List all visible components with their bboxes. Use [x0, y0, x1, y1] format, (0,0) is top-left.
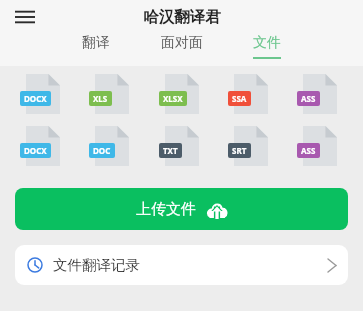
staticText: TXT — [163, 145, 178, 156]
staticText: SSA — [232, 93, 247, 104]
staticText: 上传文件 — [136, 200, 196, 219]
staticText: 文件 — [253, 34, 281, 52]
staticText: DOC — [93, 145, 111, 156]
staticText: 哈汉翻译君 — [143, 7, 221, 27]
staticText: 面对面 — [161, 34, 203, 52]
button[interactable]: Menu — [8, 0, 42, 34]
staticText: ASS — [301, 145, 316, 156]
staticText: DOCX — [24, 93, 47, 104]
staticText: 文件翻译记录 — [53, 256, 140, 274]
staticText: DOCX — [24, 145, 47, 156]
button[interactable]: 翻译 — [76, 34, 116, 59]
button[interactable]: 面对面 — [155, 34, 209, 59]
staticText: 翻译 — [82, 34, 110, 52]
staticText: ASS — [301, 93, 316, 104]
staticText: XLSX — [163, 93, 183, 104]
button[interactable]: 文件翻译记录 — [15, 245, 348, 285]
staticText: SRT — [232, 145, 247, 156]
staticText: XLS — [93, 93, 108, 104]
button[interactable]: 文件 — [247, 34, 287, 59]
button[interactable]: 上传文件 — [15, 188, 348, 230]
